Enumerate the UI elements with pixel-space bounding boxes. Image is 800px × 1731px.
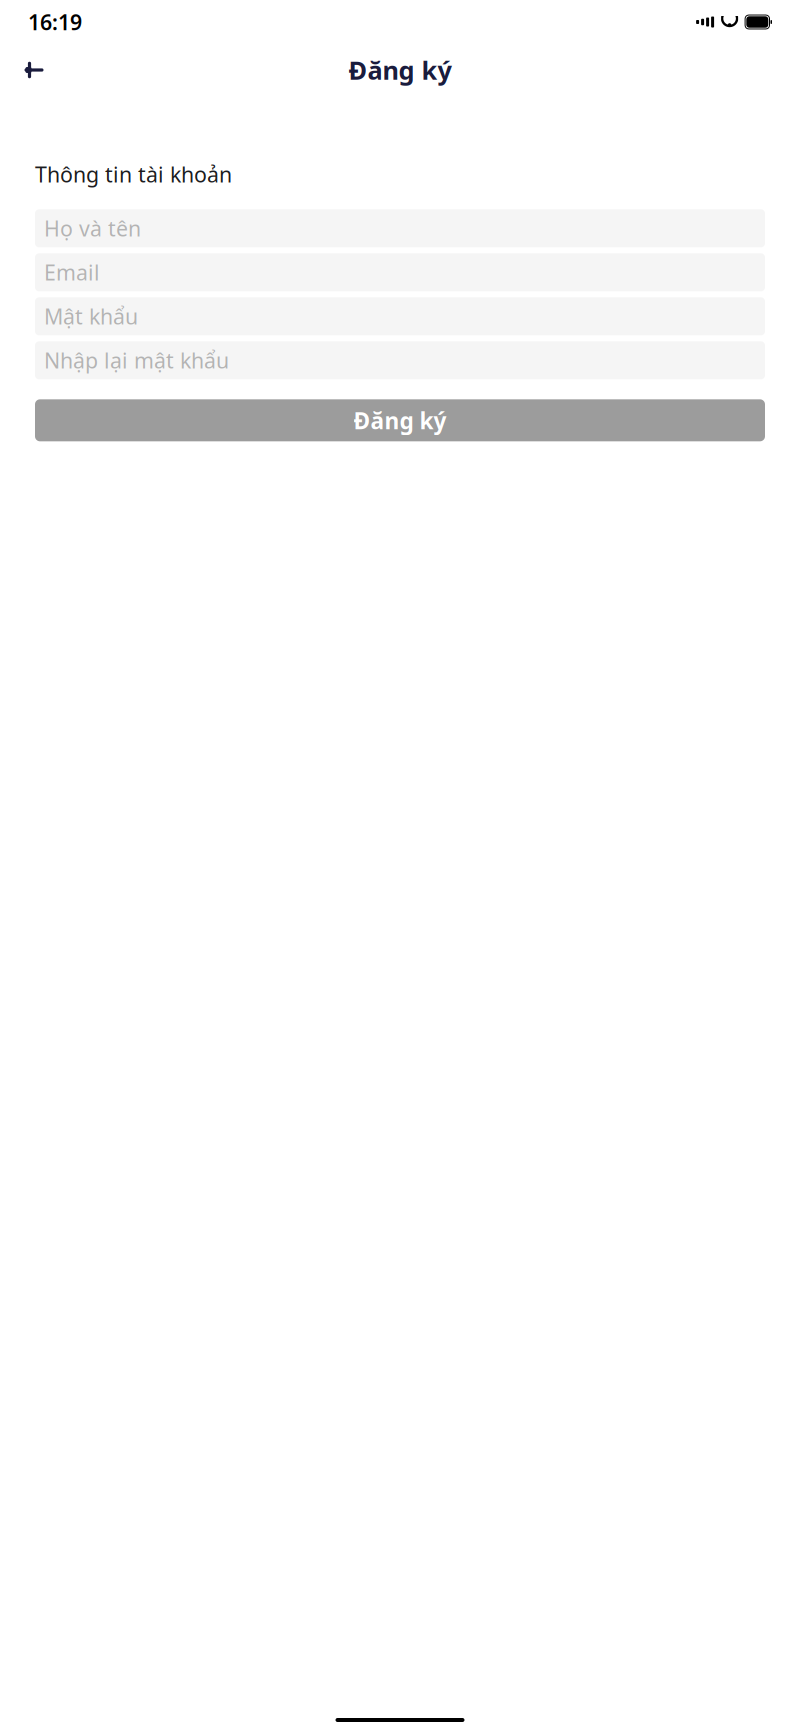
staticText: Mật khẩu — [44, 302, 138, 330]
staticText: Email — [44, 258, 100, 286]
staticText: Nhập lại mật khẩu — [44, 346, 229, 374]
staticText: Đăng ký — [348, 53, 451, 87]
button[interactable]: Back — [14, 50, 54, 90]
staticText: Họ và tên — [44, 214, 141, 242]
button[interactable]: Đăng ký — [35, 399, 765, 441]
staticText: 16:19 — [28, 8, 82, 36]
staticText: Đăng ký — [353, 405, 446, 435]
staticText: Thông tin tài khoản — [35, 160, 232, 188]
